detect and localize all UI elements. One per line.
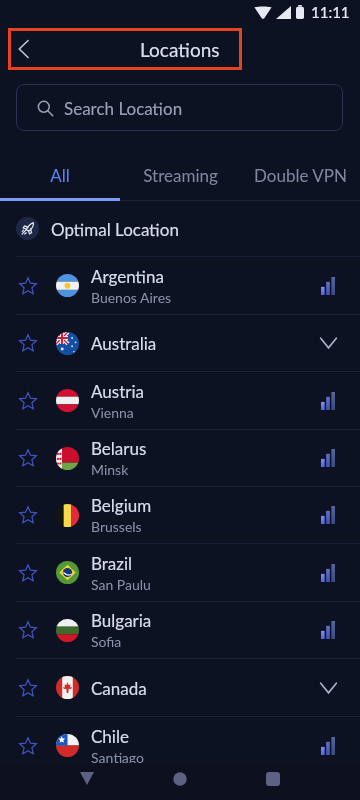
button[interactable]: Favorite (16, 676, 40, 700)
staticText: Double VPN (254, 165, 347, 185)
staticText: Belarus (91, 438, 147, 458)
button[interactable]: Favorite (0, 544, 360, 601)
button[interactable]: Favorite (0, 257, 360, 314)
staticText: Brussels (91, 518, 142, 535)
button[interactable]: Double VPN (240, 131, 360, 199)
staticText: Belgium (91, 495, 152, 515)
staticText: Vienna (91, 404, 134, 421)
button[interactable]: Back (62, 763, 111, 800)
button[interactable]: Favorite (0, 717, 360, 774)
button[interactable]: Favorite (0, 659, 360, 716)
button[interactable]: Favorite (16, 331, 40, 355)
staticText: Minsk (91, 461, 129, 478)
button[interactable]: Favorite (16, 503, 40, 527)
staticText: Chile (91, 726, 129, 746)
staticText: Streaming (143, 165, 218, 185)
button[interactable]: Favorite (16, 618, 40, 642)
staticText: Bulgaria (91, 610, 152, 630)
button[interactable]: Favorite (16, 446, 40, 470)
staticText: Optimal Location (51, 219, 179, 239)
staticText: Buenos Aires (91, 289, 172, 306)
staticText: Brazil (91, 553, 133, 573)
button[interactable]: Optimal Location (0, 201, 360, 256)
button[interactable]: Recents (249, 763, 297, 800)
button[interactable]: All (0, 131, 120, 199)
staticText: Austria (91, 381, 144, 401)
button[interactable]: Favorite (16, 561, 40, 585)
button[interactable]: Favorite (0, 372, 360, 429)
staticText: 11:11 (311, 3, 350, 21)
button[interactable]: Favorite (0, 430, 360, 486)
staticText: Argentina (91, 266, 164, 286)
button[interactable]: Favorite (16, 274, 40, 298)
staticText: Santiago (91, 749, 144, 766)
staticText: San Paulu (91, 576, 151, 593)
button[interactable]: Favorite (0, 602, 360, 658)
button[interactable]: Favorite (0, 315, 360, 371)
staticText: Sofia (91, 633, 122, 650)
staticText: Australia (91, 333, 157, 353)
button[interactable]: Favorite (0, 487, 360, 543)
button[interactable]: Search Location (16, 84, 343, 131)
staticText: All (50, 165, 70, 185)
staticText: Locations (140, 38, 220, 61)
button[interactable]: Back (3, 29, 43, 69)
button[interactable]: Expand (313, 328, 343, 358)
button[interactable]: Favorite (16, 389, 40, 413)
staticText: Search Location (64, 98, 183, 118)
button[interactable]: Expand (313, 673, 343, 703)
staticText: Canada (91, 678, 147, 698)
button[interactable]: Home (156, 763, 204, 800)
button[interactable]: Streaming (120, 131, 240, 199)
button[interactable]: Favorite (16, 734, 40, 758)
